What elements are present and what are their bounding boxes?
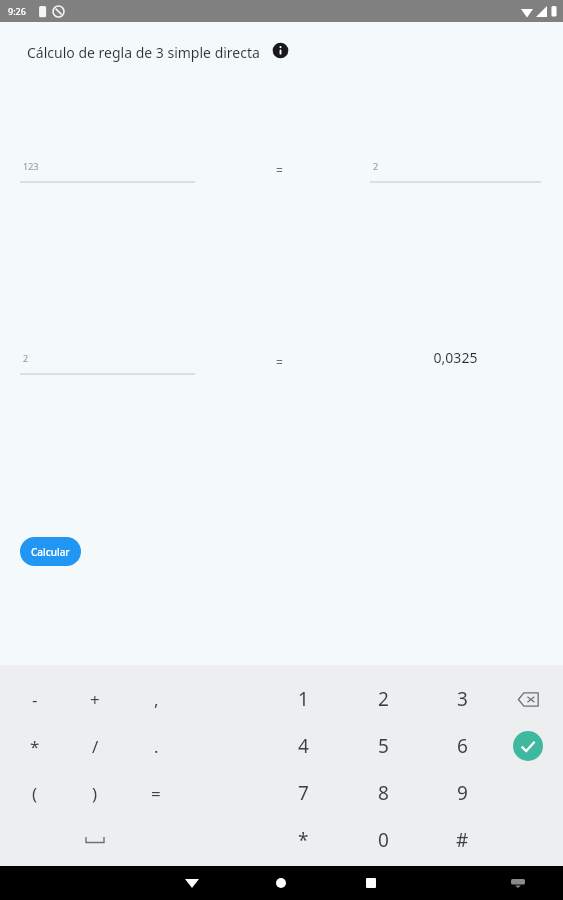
- staticText: 9: [457, 780, 468, 806]
- staticText: 0: [378, 827, 389, 853]
- button[interactable]: 6: [436, 724, 488, 768]
- staticText: 5: [378, 733, 389, 759]
- button[interactable]: 7: [277, 771, 329, 815]
- button[interactable]: 5: [357, 724, 409, 768]
- staticText: 123: [23, 160, 39, 172]
- button[interactable]: =: [130, 771, 182, 815]
- staticText: *: [30, 735, 40, 758]
- staticText: ,: [154, 688, 159, 711]
- button[interactable]: 2: [357, 677, 409, 721]
- button[interactable]: 9: [436, 771, 488, 815]
- staticText: +: [90, 688, 100, 711]
- button[interactable]: +: [69, 677, 121, 721]
- button[interactable]: *: [9, 724, 61, 768]
- button[interactable]: #: [436, 818, 488, 862]
- staticText: 9:26: [8, 5, 26, 17]
- button[interactable]: 123: [20, 152, 195, 183]
- button[interactable]: 2: [370, 152, 541, 183]
- button[interactable]: Aceptar: [503, 726, 553, 766]
- staticText: (: [32, 782, 38, 805]
- button[interactable]: 0: [357, 818, 409, 862]
- staticText: Cálculo de regla de 3 simple directa: [27, 43, 260, 62]
- button[interactable]: (: [9, 771, 61, 815]
- staticText: 2: [23, 352, 29, 364]
- staticText: =: [276, 354, 283, 370]
- staticText: #: [456, 827, 469, 853]
- staticText: .: [154, 735, 159, 758]
- staticText: ): [92, 782, 98, 805]
- button[interactable]: ): [69, 771, 121, 815]
- button[interactable]: Ocultar teclado: [496, 866, 540, 900]
- button[interactable]: Atrás: [170, 866, 214, 900]
- button[interactable]: .: [130, 724, 182, 768]
- staticText: 2: [378, 686, 389, 712]
- staticText: /: [92, 735, 99, 758]
- button[interactable]: 8: [357, 771, 409, 815]
- staticText: 6: [457, 733, 468, 759]
- button[interactable]: Recientes: [349, 866, 393, 900]
- button[interactable]: Inicio: [259, 866, 303, 900]
- staticText: =: [151, 782, 161, 805]
- staticText: 7: [298, 780, 309, 806]
- button[interactable]: Calcular: [20, 537, 81, 566]
- button[interactable]: ,: [130, 677, 182, 721]
- button[interactable]: *: [277, 818, 329, 862]
- staticText: *: [298, 827, 309, 853]
- staticText: 8: [378, 780, 389, 806]
- button[interactable]: -: [9, 677, 61, 721]
- button[interactable]: /: [69, 724, 121, 768]
- button[interactable]: 1: [277, 677, 329, 721]
- button[interactable]: 4: [277, 724, 329, 768]
- staticText: 2: [373, 160, 379, 172]
- staticText: 3: [457, 686, 468, 712]
- staticText: =: [276, 162, 283, 178]
- staticText: -: [32, 688, 38, 711]
- button[interactable]: 2: [20, 344, 195, 375]
- button[interactable]: Información: [271, 41, 289, 59]
- staticText: 4: [298, 733, 309, 759]
- button[interactable]: 3: [436, 677, 488, 721]
- staticText: 1: [298, 686, 309, 712]
- staticText: 0,0325: [370, 348, 541, 367]
- button[interactable]: Espacio: [69, 820, 121, 860]
- button[interactable]: Borrar: [503, 679, 553, 719]
- staticText: Calcular: [31, 545, 70, 559]
